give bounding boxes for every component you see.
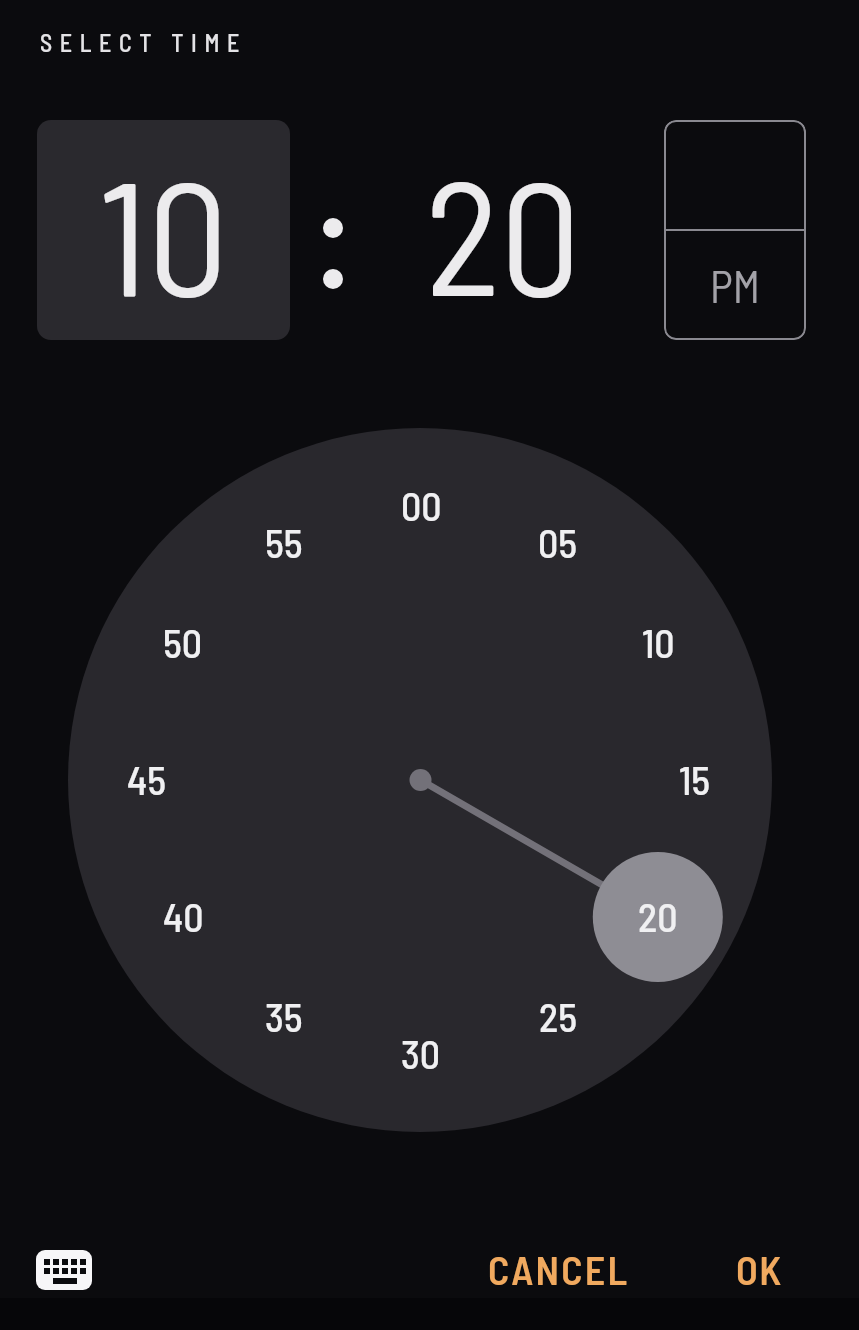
button[interactable]: 55 <box>239 497 329 587</box>
staticText: 20 <box>638 892 678 940</box>
button[interactable] <box>664 120 806 229</box>
button[interactable]: 00 <box>376 460 466 550</box>
button[interactable]: CANCEL <box>458 1238 660 1300</box>
button[interactable]: 45 <box>102 734 192 824</box>
staticText: 55 <box>265 518 303 566</box>
button[interactable]: 10 <box>613 597 703 687</box>
staticText: CANCEL <box>488 1245 630 1293</box>
staticText: 35 <box>265 992 303 1040</box>
button[interactable]: 25 <box>513 971 603 1061</box>
staticText: SELECT TIME <box>40 28 247 57</box>
staticText: PM <box>710 259 760 312</box>
staticText: 05 <box>538 518 578 566</box>
staticText: 25 <box>539 992 578 1040</box>
staticText: 50 <box>163 618 203 666</box>
staticText: 30 <box>401 1029 441 1077</box>
button[interactable]: PM <box>664 231 806 340</box>
staticText: 00 <box>401 481 442 529</box>
button[interactable]: 10 <box>37 120 290 340</box>
button[interactable]: 50 <box>138 597 228 687</box>
staticText: 10 <box>99 136 229 328</box>
staticText: OK <box>736 1245 783 1293</box>
button[interactable]: 30 <box>376 1008 466 1098</box>
button[interactable]: OK <box>706 1238 813 1300</box>
button[interactable]: 35 <box>239 971 329 1061</box>
button[interactable]: 40 <box>138 871 228 961</box>
button[interactable]: 15 <box>650 734 740 824</box>
button[interactable]: 05 <box>513 497 603 587</box>
button[interactable] <box>26 1240 102 1300</box>
staticText: 20 <box>425 136 581 328</box>
staticText: 15 <box>679 755 711 803</box>
button[interactable]: 20 <box>613 871 703 961</box>
staticText: 40 <box>163 892 204 940</box>
staticText: 10 <box>642 618 675 666</box>
staticText: 45 <box>127 755 167 803</box>
button[interactable]: 20 <box>376 120 629 340</box>
